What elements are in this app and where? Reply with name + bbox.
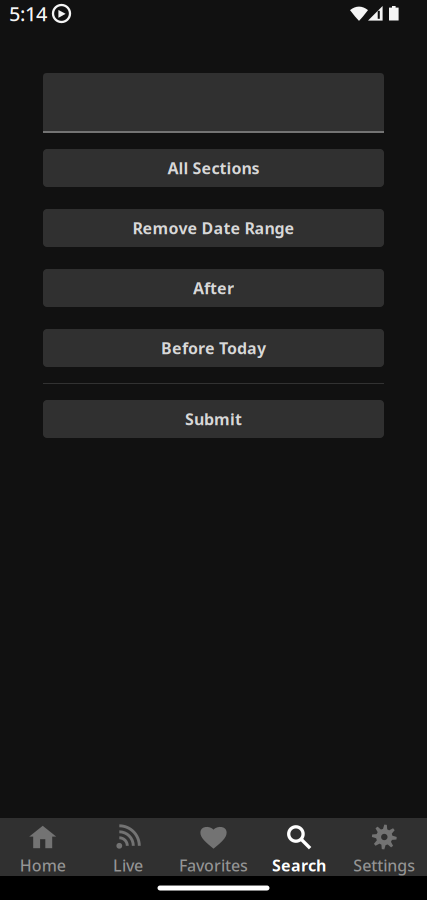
staticText: Settings [353, 855, 415, 876]
staticText: Favorites [179, 855, 248, 876]
button[interactable]: Search field [43, 73, 384, 133]
staticText: Remove Date Range [132, 217, 294, 239]
button[interactable]: Submit [43, 400, 384, 438]
staticText: Search [272, 855, 326, 876]
button[interactable]: Search [256, 818, 342, 876]
button[interactable]: Remove Date Range [43, 209, 384, 247]
button[interactable]: Settings [342, 818, 427, 876]
button[interactable]: All Sections [43, 149, 384, 187]
staticText: Home [20, 855, 66, 876]
button[interactable]: Live [85, 818, 171, 876]
button[interactable]: After [43, 269, 384, 307]
staticText: 5:14 [9, 0, 47, 27]
button[interactable]: Before Today [43, 329, 384, 367]
staticText: Live [113, 855, 143, 876]
staticText: Before Today [161, 337, 266, 359]
button[interactable]: Home [0, 818, 85, 876]
staticText: All Sections [167, 157, 259, 179]
staticText: After [193, 277, 234, 299]
button[interactable]: Favorites [171, 818, 256, 876]
staticText: Submit [185, 408, 242, 430]
